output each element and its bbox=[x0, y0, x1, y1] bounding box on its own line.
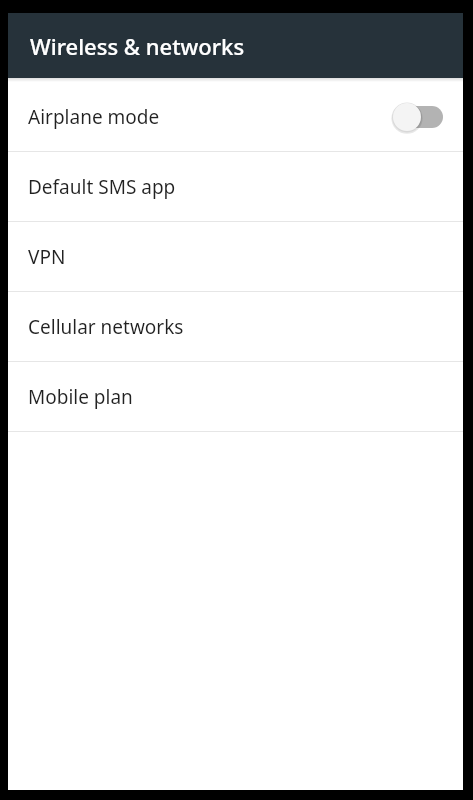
staticText: Wireless & networks bbox=[30, 31, 245, 61]
button[interactable]: Mobile plan bbox=[8, 362, 463, 431]
staticText: Default SMS app bbox=[28, 174, 443, 200]
button[interactable]: Cellular networks bbox=[8, 292, 463, 361]
staticText: Cellular networks bbox=[28, 314, 443, 340]
staticText: Airplane mode bbox=[28, 104, 391, 130]
staticText: Mobile plan bbox=[28, 384, 443, 410]
button[interactable]: Airplane mode bbox=[8, 82, 463, 151]
button[interactable]: VPN bbox=[8, 222, 463, 291]
button[interactable]: Toggle airplane mode bbox=[391, 101, 443, 133]
button[interactable]: Default SMS app bbox=[8, 152, 463, 221]
staticText: VPN bbox=[28, 244, 443, 270]
